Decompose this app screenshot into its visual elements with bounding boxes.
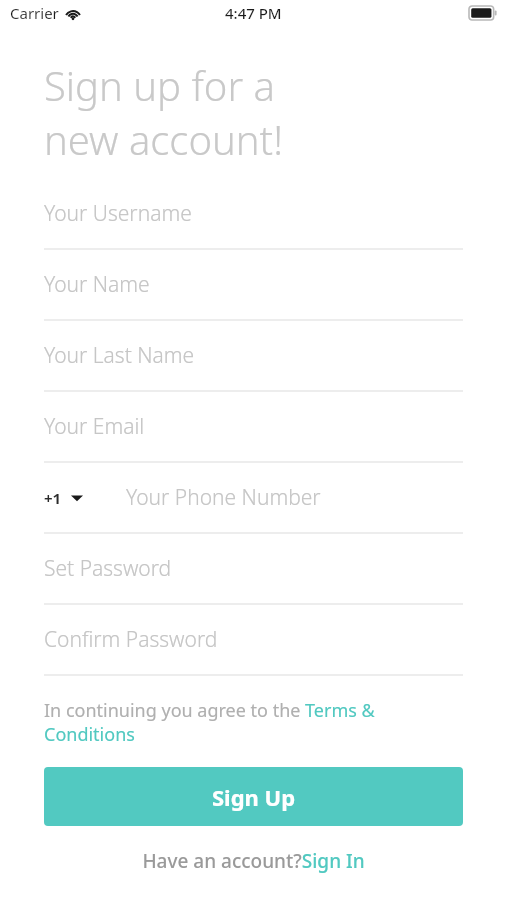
staticText: Confirm Password (44, 625, 218, 654)
button[interactable]: In continuing you agree to the Terms & C… (44, 698, 463, 746)
staticText: In continuing you agree to the Terms & C… (44, 698, 463, 746)
staticText: Sign up for a (44, 58, 275, 112)
staticText: +1 (44, 488, 62, 508)
staticText: Carrier (10, 3, 59, 23)
button[interactable]: Your Phone Number (126, 463, 463, 532)
button[interactable]: Your Last Name (44, 321, 463, 392)
staticText: Sign Up (212, 782, 296, 812)
button[interactable]: Set Password (44, 534, 463, 605)
staticText: Your Name (44, 270, 150, 299)
staticText: Your Phone Number (126, 483, 321, 512)
staticText: new account! (44, 112, 284, 166)
button[interactable]: Have an account?Sign In (142, 848, 365, 874)
staticText: Have an account?Sign In (142, 848, 365, 874)
button[interactable]: Your Email (44, 392, 463, 463)
button[interactable]: Select country code (44, 488, 83, 508)
button[interactable]: Your Name (44, 250, 463, 321)
staticText: Your Email (44, 412, 145, 441)
button[interactable]: Your Username (44, 179, 463, 250)
button[interactable]: Confirm Password (44, 605, 463, 676)
button[interactable]: Sign Up (44, 767, 463, 826)
staticText: Your Last Name (44, 341, 195, 370)
staticText: Your Username (44, 199, 192, 228)
staticText: 4:47 PM (225, 3, 282, 23)
staticText: Set Password (44, 554, 172, 583)
